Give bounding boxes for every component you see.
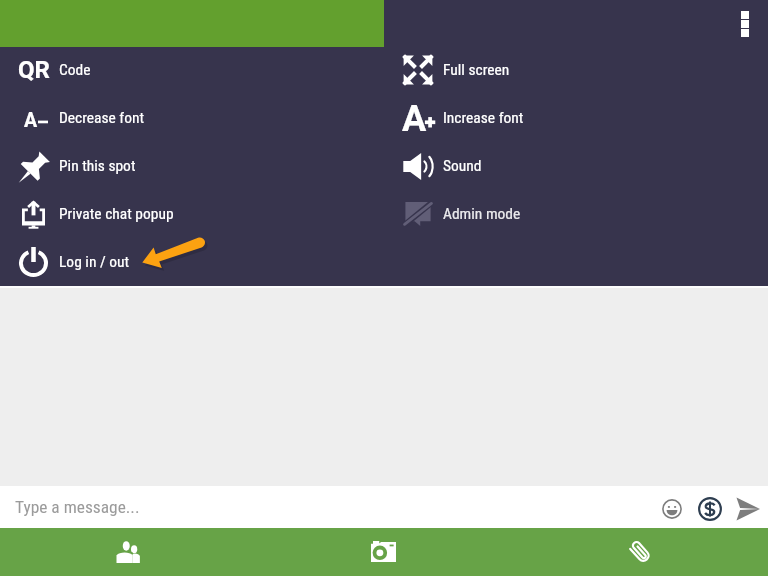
staticText: Decrease font <box>59 109 145 127</box>
button[interactable]: Sound <box>384 142 768 190</box>
button[interactable]: More options <box>722 0 768 47</box>
staticText: Private chat popup <box>59 205 174 223</box>
button[interactable]: Pin this spot <box>0 142 384 190</box>
staticText: Code <box>59 61 91 79</box>
staticText: A <box>402 98 427 140</box>
button[interactable]: Send money <box>691 486 729 528</box>
staticText: Pin this spot <box>59 157 136 175</box>
staticText: QR <box>18 56 50 84</box>
button[interactable]: Full screen <box>384 46 768 94</box>
button[interactable]: A <box>0 94 384 142</box>
staticText: A <box>24 109 38 132</box>
button[interactable]: Send message <box>729 486 766 528</box>
staticText: Full screen <box>443 61 510 79</box>
button[interactable]: Camera <box>256 528 512 576</box>
button[interactable]: Admin mode <box>384 190 768 238</box>
staticText: Log in / out <box>59 253 130 271</box>
button[interactable]: Attach file <box>512 528 768 576</box>
button[interactable]: A <box>384 94 768 142</box>
button[interactable]: People <box>0 528 256 576</box>
button[interactable]: Log in / out <box>0 238 384 286</box>
staticText: Type a message... <box>15 497 653 517</box>
button[interactable]: Private chat popup <box>0 190 384 238</box>
staticText: Admin mode <box>443 205 521 223</box>
staticText: Increase font <box>443 109 524 127</box>
staticText: Sound <box>443 157 482 175</box>
button[interactable]: QR <box>0 46 384 94</box>
button[interactable]: Emoji <box>653 486 691 528</box>
